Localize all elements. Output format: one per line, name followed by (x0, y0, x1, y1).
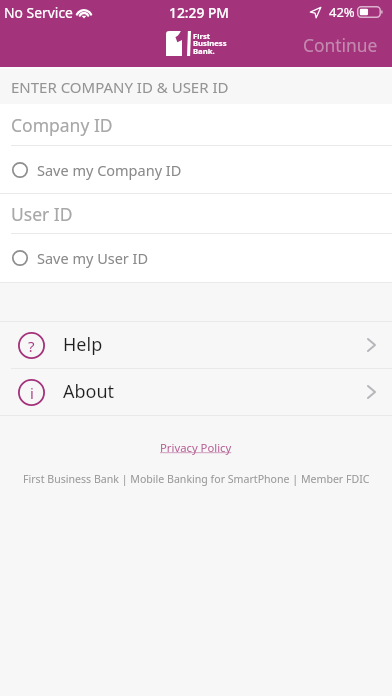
staticText: Save my User ID (37, 248, 149, 268)
staticText: Company ID (11, 113, 113, 137)
button[interactable]: i (0, 369, 392, 415)
staticText: ENTER COMPANY ID & USER ID (11, 77, 229, 97)
staticText: Continue (303, 33, 378, 57)
staticText: No Service (4, 3, 73, 22)
staticText: Privacy Policy (160, 440, 232, 455)
staticText: Business (193, 38, 227, 48)
staticText: i (30, 383, 34, 403)
staticText: 12:29 PM (169, 3, 229, 22)
staticText: First (193, 31, 211, 41)
staticText: Help (63, 332, 103, 357)
button[interactable]: Save my User ID (0, 234, 392, 282)
staticText: First Business Bank | Mobile Banking for… (23, 472, 370, 486)
staticText: ? (28, 336, 35, 356)
button[interactable]: Save my Company ID (0, 146, 392, 193)
staticText: User ID (11, 202, 73, 226)
staticText: 42% (329, 3, 355, 21)
staticText: Save my Company ID (37, 160, 182, 180)
button[interactable]: Continue (287, 25, 392, 67)
staticText: About (63, 379, 115, 404)
button[interactable]: ? (0, 322, 392, 368)
staticText: Bank. (193, 46, 215, 56)
button[interactable]: Privacy Policy (160, 440, 232, 455)
button[interactable]: Company ID (0, 104, 392, 145)
button[interactable]: User ID (0, 194, 392, 233)
